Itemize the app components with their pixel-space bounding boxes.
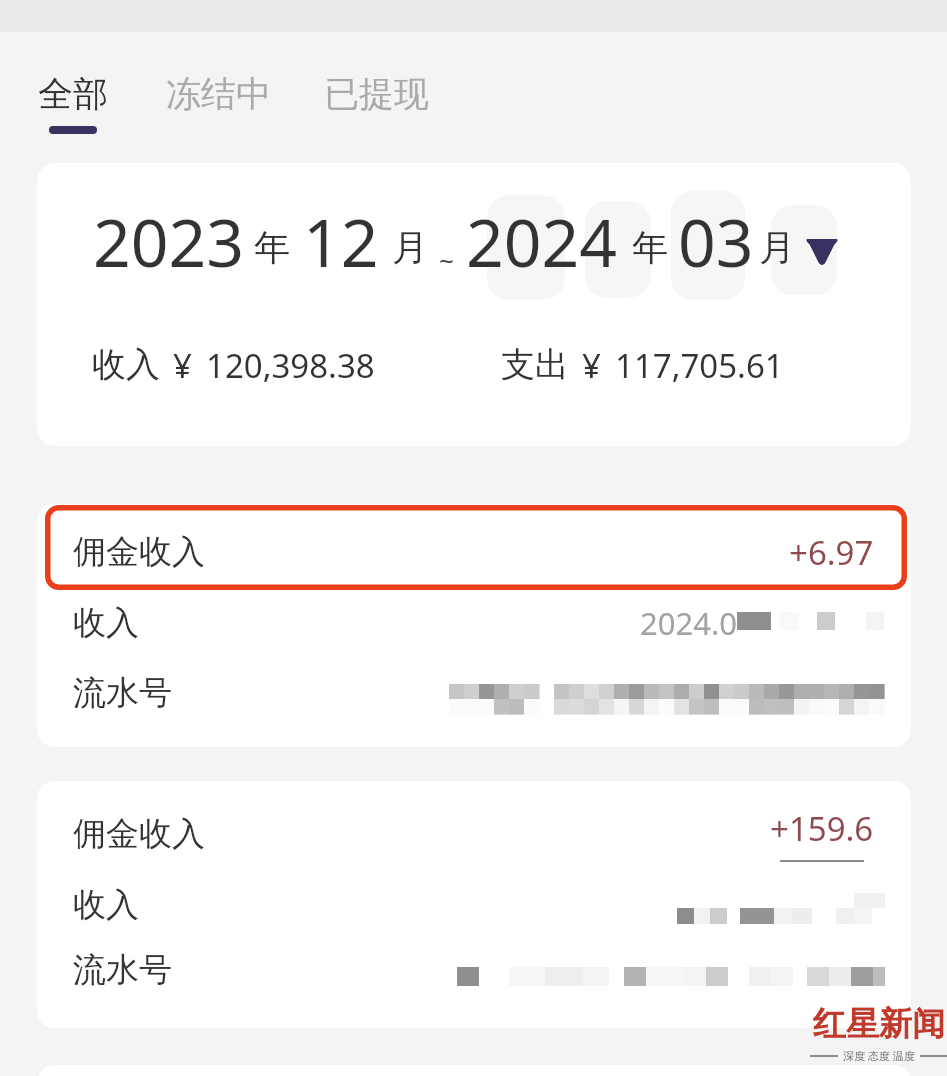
staticText: 深度 态度 温度: [843, 1048, 915, 1063]
staticText: 全部: [38, 72, 108, 116]
button[interactable]: 2023: [37, 163, 911, 446]
staticText: 117,705.61: [615, 343, 784, 388]
staticText: 月: [759, 225, 795, 270]
staticText: 流水号: [73, 672, 172, 714]
staticText: 佣金收入: [73, 813, 205, 855]
staticText: 收入: [73, 602, 139, 644]
staticText: 支出: [501, 343, 569, 386]
button[interactable]: 全部: [38, 32, 108, 134]
staticText: 年: [254, 225, 290, 270]
staticText: 佣金收入: [73, 531, 205, 573]
staticText: 收入: [92, 343, 160, 386]
staticText: 2024: [466, 196, 618, 286]
staticText: 红星新闻: [813, 1003, 945, 1045]
staticText: 收入: [73, 884, 139, 926]
staticText: 已提现: [324, 72, 429, 116]
button[interactable]: 冻结中: [166, 32, 271, 134]
staticText: 冻结中: [166, 72, 271, 116]
staticText: +6.97: [789, 530, 874, 575]
staticText: 120,398.38: [206, 343, 375, 388]
staticText: +159.6: [770, 806, 874, 851]
staticText: 2023: [93, 196, 245, 286]
button[interactable]: 佣金收入: [37, 504, 911, 747]
staticText: 月: [392, 225, 428, 270]
staticText: 12: [303, 196, 379, 286]
staticText: 年: [632, 225, 668, 270]
staticText: ~: [439, 242, 454, 277]
button[interactable]: 佣金收入: [37, 781, 911, 1028]
staticText: ¥: [173, 343, 192, 388]
staticText: 2024.0: [640, 602, 737, 644]
staticText: ¥: [582, 343, 601, 388]
staticText: 03: [678, 196, 754, 286]
button[interactable]: 选择日期范围: [804, 239, 840, 267]
staticText: 流水号: [73, 949, 172, 991]
button[interactable]: 已提现: [324, 32, 429, 134]
